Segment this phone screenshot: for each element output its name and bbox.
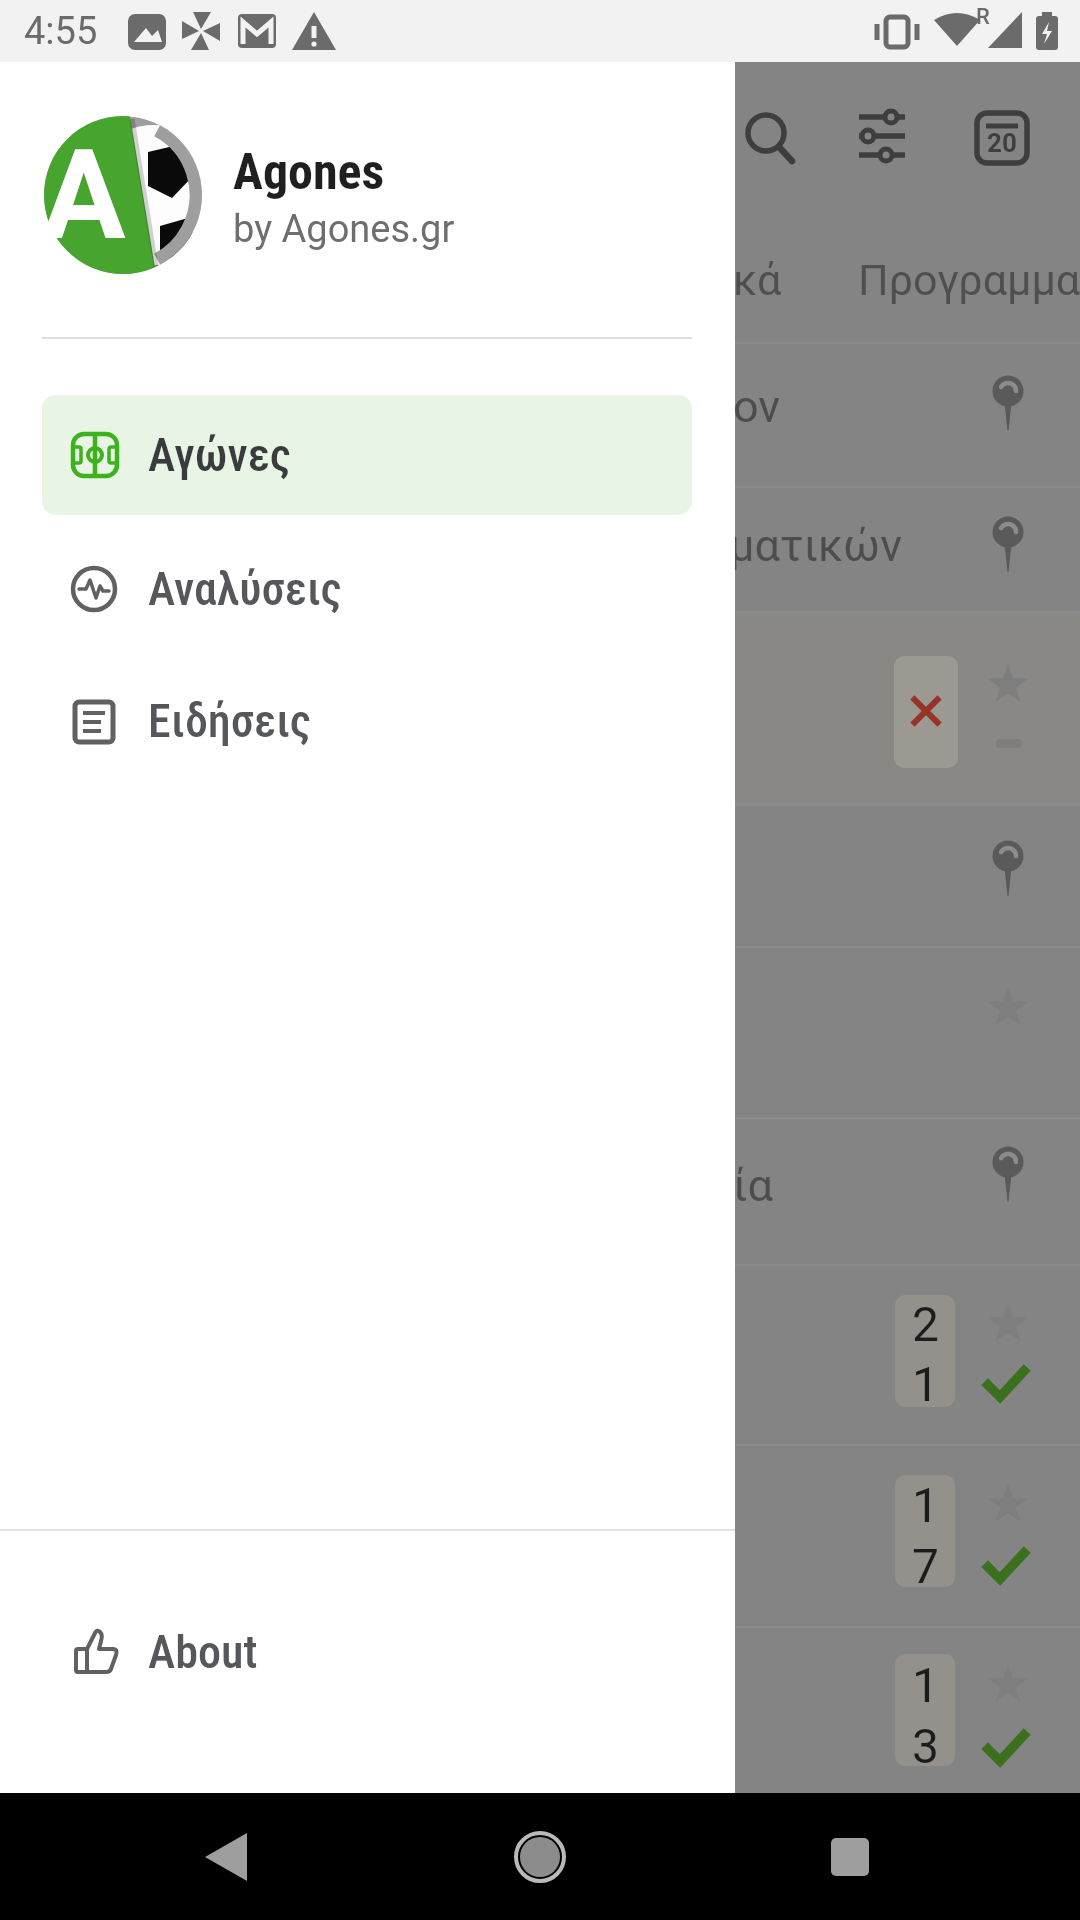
button[interactable]: Ειδήσεις xyxy=(42,661,692,781)
staticText: 20 xyxy=(987,128,1017,158)
staticText: Agones xyxy=(233,143,385,202)
button[interactable]: Αναλύσεις xyxy=(42,529,692,649)
staticText: by Agones.gr xyxy=(233,207,455,252)
staticText: ον xyxy=(733,380,781,433)
staticText: 7 xyxy=(912,1538,939,1594)
staticText: 1 xyxy=(912,1657,939,1713)
staticText: 3 xyxy=(912,1718,939,1774)
staticText: About xyxy=(148,1625,258,1679)
button[interactable] xyxy=(0,62,1080,1793)
button[interactable]: Αγώνες xyxy=(42,395,692,515)
staticText: 4:55 xyxy=(24,9,98,54)
staticText: Προγραμμα xyxy=(858,255,1080,305)
button[interactable]: About xyxy=(42,1592,692,1712)
staticText: ία xyxy=(733,1159,774,1212)
staticText: Αγώνες xyxy=(148,428,291,482)
staticText: 2 xyxy=(912,1296,939,1352)
button[interactable] xyxy=(0,1793,1080,1920)
staticText: 1 xyxy=(912,1477,939,1533)
staticText: 1 xyxy=(912,1356,939,1412)
staticText: A xyxy=(42,123,126,268)
staticText: Αναλύσεις xyxy=(148,562,342,616)
staticText: ματικών xyxy=(729,519,902,572)
staticText: R xyxy=(976,4,990,30)
staticText: κά xyxy=(733,255,782,305)
staticText: Ειδήσεις xyxy=(148,694,312,748)
